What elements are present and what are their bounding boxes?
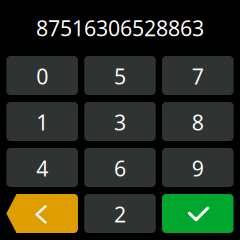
staticText: 87516306528863 <box>36 14 204 42</box>
staticText: 0 <box>36 62 48 90</box>
staticText: 2 <box>114 200 126 228</box>
staticText: 8 <box>192 108 204 136</box>
button[interactable]: 4 <box>6 148 78 187</box>
button[interactable]: 3 <box>84 102 156 141</box>
button[interactable]: 9 <box>162 148 234 187</box>
staticText: 5 <box>114 62 126 90</box>
button[interactable]: 6 <box>84 148 156 187</box>
staticText: 6 <box>114 154 126 182</box>
staticText: 1 <box>36 108 48 136</box>
button[interactable]: 7 <box>162 56 234 95</box>
button[interactable]: 2 <box>84 194 156 233</box>
staticText: 7 <box>192 62 204 90</box>
staticText: 9 <box>192 154 204 182</box>
button[interactable]: 0 <box>6 56 78 95</box>
button[interactable]: 5 <box>84 56 156 95</box>
button[interactable]: Confirm <box>162 194 234 233</box>
staticText: 4 <box>36 154 48 182</box>
button[interactable]: 1 <box>6 102 78 141</box>
button[interactable]: 8 <box>162 102 234 141</box>
staticText: 3 <box>114 108 126 136</box>
button[interactable]: Delete <box>6 194 78 233</box>
